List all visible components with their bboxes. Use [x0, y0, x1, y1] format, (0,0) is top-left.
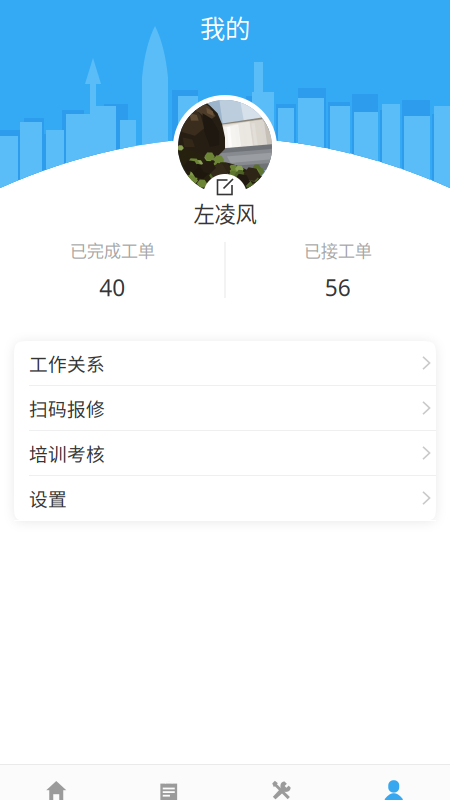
button[interactable]: 工作关系: [14, 341, 436, 386]
button[interactable]: 维修: [225, 765, 337, 800]
staticText: 已接工单: [304, 237, 372, 262]
staticText: 培训考核: [29, 439, 105, 466]
staticText: 设置: [29, 484, 67, 511]
button[interactable]: 我的: [337, 765, 450, 800]
staticText: 左凌风: [193, 198, 256, 228]
button[interactable]: 设置: [14, 476, 436, 521]
button[interactable]: 培训考核: [14, 431, 436, 476]
staticText: 我的: [200, 9, 250, 45]
button[interactable]: 首页: [0, 765, 112, 800]
staticText: 已完成工单: [70, 237, 155, 262]
staticText: 工作关系: [29, 349, 105, 376]
button[interactable]: 扫码报修: [14, 386, 436, 431]
staticText: 扫码报修: [29, 394, 105, 421]
staticText: 40: [99, 272, 125, 303]
button[interactable]: 工单: [112, 765, 225, 800]
staticText: 56: [325, 272, 351, 303]
